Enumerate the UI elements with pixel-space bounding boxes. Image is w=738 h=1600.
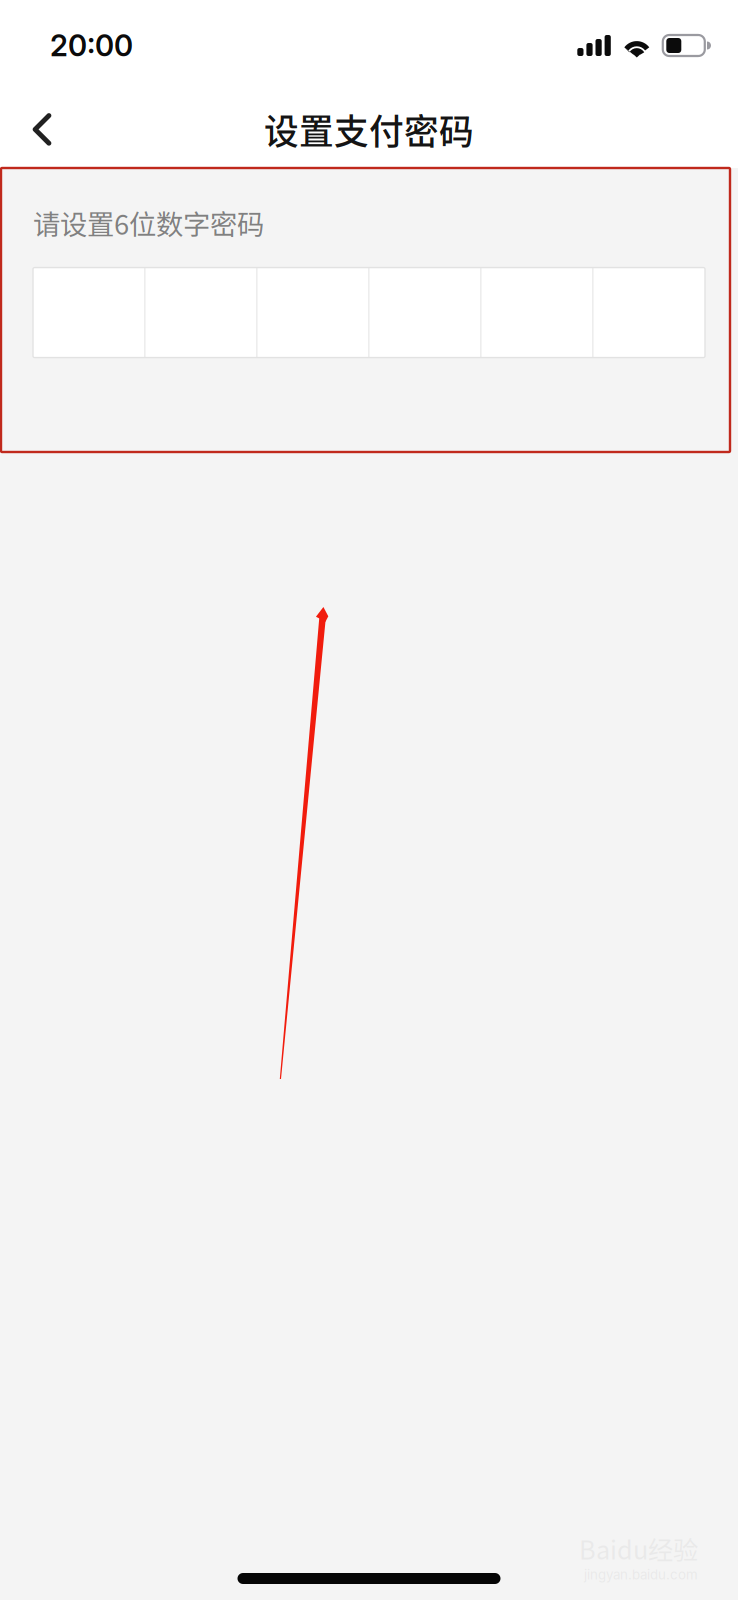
staticText: 请设置6位数字密码: [33, 203, 264, 243]
button[interactable]: Password digit 5: [482, 268, 592, 358]
button[interactable]: Password digit 2: [146, 268, 256, 358]
button[interactable]: Back: [0, 91, 92, 168]
staticText: jingyan.baidu.com: [584, 1567, 698, 1583]
staticText: 20:00: [50, 28, 133, 63]
button[interactable]: Password digit 4: [370, 268, 480, 358]
button[interactable]: Password digit 3: [258, 268, 368, 358]
button[interactable]: Password digit 6: [594, 268, 704, 358]
staticText: 设置支付密码: [264, 104, 474, 155]
staticText: Baidu经验: [579, 1530, 698, 1567]
button[interactable]: Password digit 1: [34, 268, 144, 358]
